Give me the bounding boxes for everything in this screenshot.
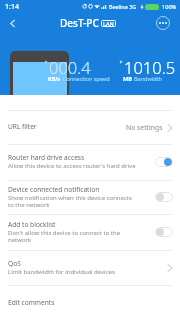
- button[interactable]: QoS: [0, 251, 180, 285]
- button[interactable]: Router hard drive access: [0, 145, 180, 180]
- staticText: 000.4: [49, 56, 91, 78]
- staticText: 100%: [162, 3, 177, 11]
- button[interactable]: Toggle off: [155, 192, 173, 202]
- staticText: MB: [123, 75, 132, 82]
- staticText: 1:14: [5, 2, 19, 12]
- staticText: Add to blocklist: [8, 220, 56, 229]
- button[interactable]: Device connected notification: [0, 181, 180, 214]
- staticText: Allow this device to access router's har…: [8, 162, 136, 170]
- button[interactable]: Toggle off: [155, 227, 173, 237]
- staticText: URL filter: [8, 122, 37, 131]
- staticText: DesT-PC: [60, 16, 99, 30]
- staticText: Router hard drive access: [8, 153, 85, 162]
- staticText: LAN: [103, 20, 114, 27]
- staticText: Connection speed: [63, 75, 110, 82]
- staticText: Device connected notification: [8, 185, 100, 194]
- button[interactable]: Edit comments: [0, 286, 180, 320]
- staticText: QoS: [8, 259, 21, 268]
- button[interactable]: Toggle on: [155, 157, 173, 167]
- staticText: Beeline 3G: [109, 3, 137, 10]
- staticText: Edit comments: [8, 298, 55, 307]
- button[interactable]: Back: [2, 13, 22, 33]
- staticText: Limit bandwidth for individual devices: [8, 268, 115, 276]
- button[interactable]: URL filter: [0, 111, 180, 144]
- button[interactable]: Add to blocklist: [0, 215, 180, 250]
- staticText: KB/s: [48, 75, 61, 82]
- staticText: 1010.5: [124, 56, 176, 78]
- staticText: Show notification when this device conne…: [8, 194, 137, 209]
- button[interactable]: More options: [156, 16, 170, 30]
- staticText: No settings: [126, 123, 163, 132]
- staticText: Don't allow this device to connect to th…: [8, 229, 137, 244]
- staticText: Bandwidth: [134, 75, 162, 82]
